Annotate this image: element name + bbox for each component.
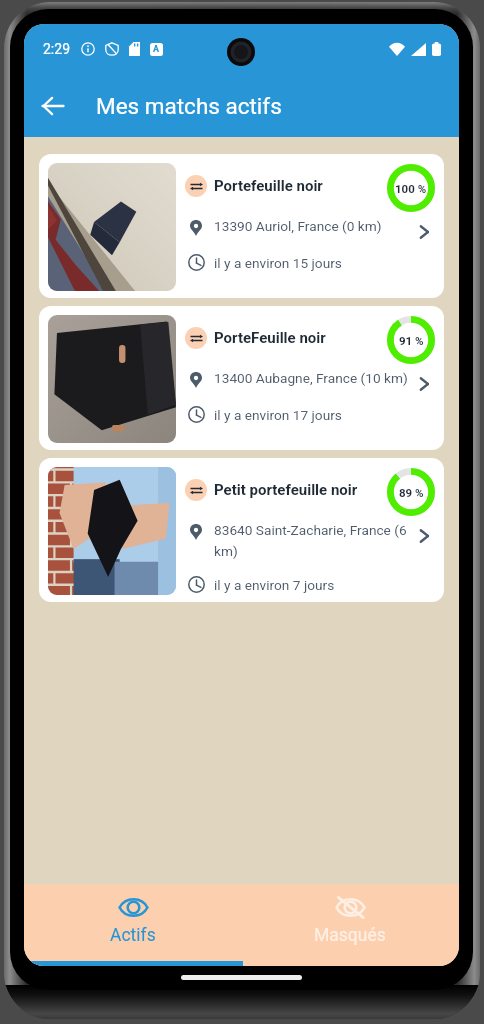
- button[interactable]: PorteFeuille noir: [39, 306, 444, 450]
- button[interactable]: Actifs: [24, 884, 241, 966]
- staticText: 2:29: [43, 41, 70, 57]
- staticText: 100 %: [395, 182, 427, 195]
- staticText: 13390 Auriol, France (0 km): [214, 218, 415, 234]
- button[interactable]: Portefeuille noir: [39, 154, 444, 298]
- staticText: Portefeuille noir: [214, 177, 323, 195]
- staticText: il y a environ 17 jours: [214, 407, 342, 423]
- staticText: Petit portefeuille noir: [214, 481, 358, 499]
- staticText: 13400 Aubagne, France (10 km): [214, 370, 415, 386]
- staticText: il y a environ 15 jours: [214, 255, 342, 271]
- button[interactable]: Petit portefeuille noir: [39, 458, 444, 602]
- staticText: 89 %: [399, 486, 424, 499]
- staticText: A: [153, 44, 160, 55]
- button[interactable]: Back: [30, 83, 76, 129]
- staticText: 91 %: [399, 334, 424, 347]
- button[interactable]: Voir: [413, 373, 435, 395]
- staticText: Mes matchs actifs: [96, 93, 282, 119]
- staticText: il y a environ 7 jours: [214, 577, 335, 593]
- staticText: 83640 Saint-Zacharie, France (6 km): [214, 522, 415, 559]
- staticText: Actifs: [110, 925, 156, 946]
- staticText: Masqués: [314, 925, 386, 946]
- button[interactable]: Voir: [413, 525, 435, 547]
- staticText: PorteFeuille noir: [214, 329, 326, 347]
- button[interactable]: Voir: [413, 221, 435, 243]
- button[interactable]: Masqués: [241, 884, 459, 966]
